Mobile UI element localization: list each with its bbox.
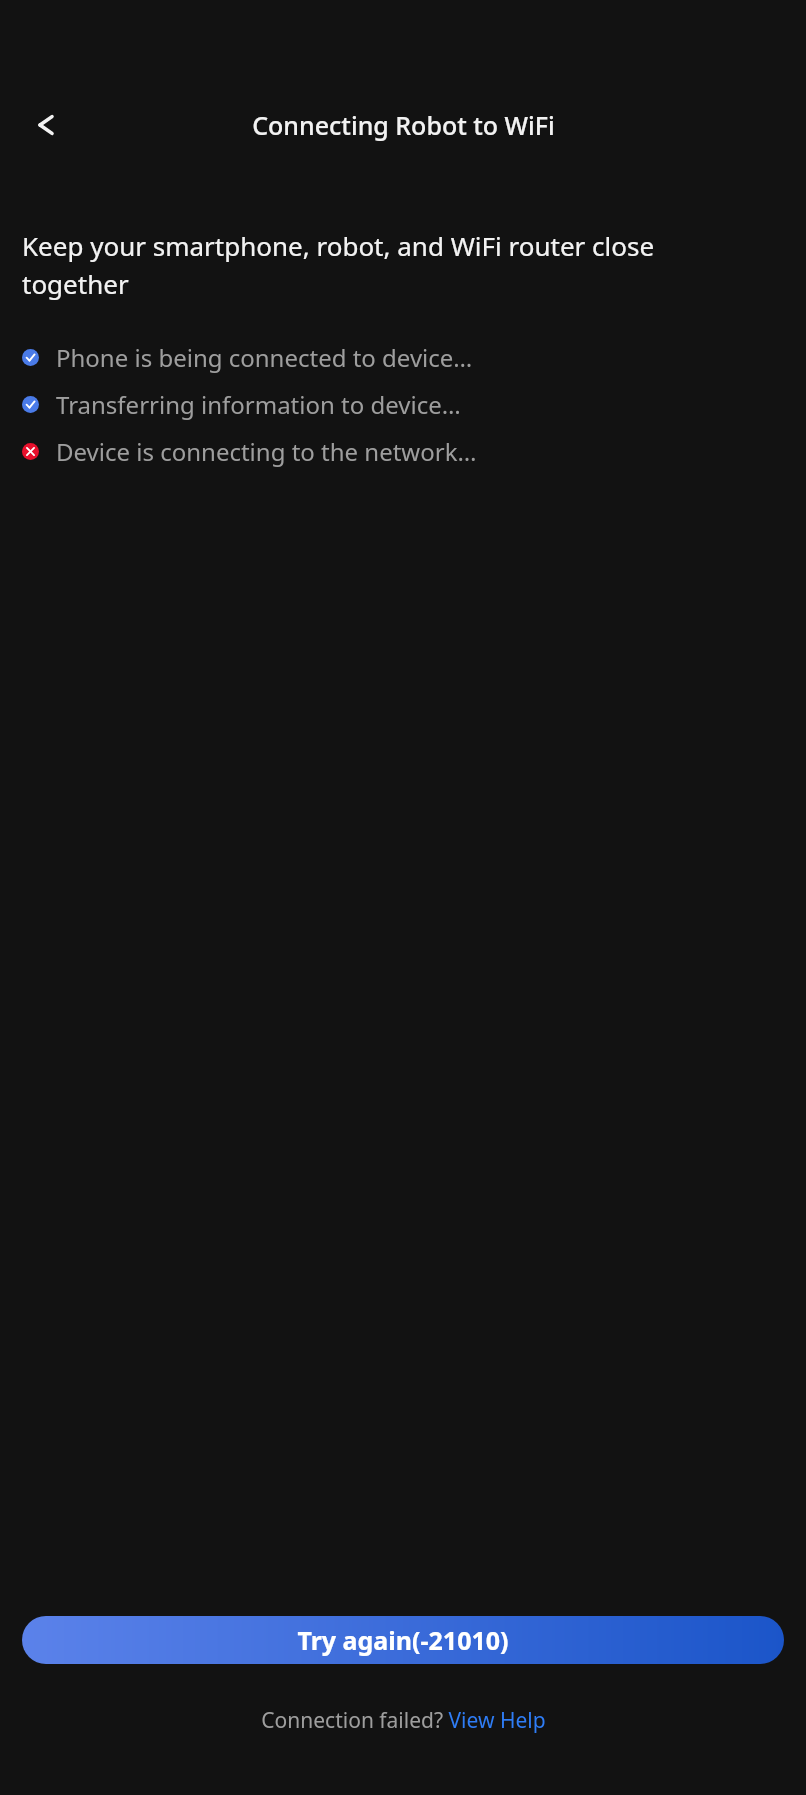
staticText: Phone is being connected to device… xyxy=(56,341,473,374)
button[interactable]: Device is connecting to the network… xyxy=(22,435,784,468)
staticText: Connection failed? View Help xyxy=(261,1706,546,1735)
staticText: Try again(-21010) xyxy=(297,1623,509,1657)
button[interactable]: Back xyxy=(18,97,74,153)
staticText: Keep your smartphone, robot, and WiFi ro… xyxy=(22,228,754,301)
staticText: Connecting Robot to WiFi xyxy=(252,108,555,142)
button[interactable]: Transferring information to device… xyxy=(22,388,784,421)
button[interactable]: Phone is being connected to device… xyxy=(22,341,784,374)
staticText: Device is connecting to the network… xyxy=(56,435,477,468)
staticText: Transferring information to device… xyxy=(56,388,461,421)
button[interactable]: Connection failed? View Help xyxy=(261,1706,546,1735)
button[interactable]: Try again(-21010) xyxy=(22,1616,784,1664)
